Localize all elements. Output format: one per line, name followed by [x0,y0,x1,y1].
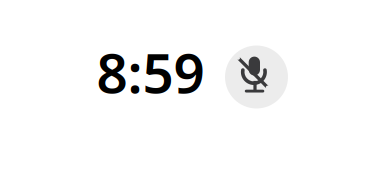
button[interactable]: Unmute microphone [225,45,288,108]
staticText: 8:59 [96,36,204,108]
